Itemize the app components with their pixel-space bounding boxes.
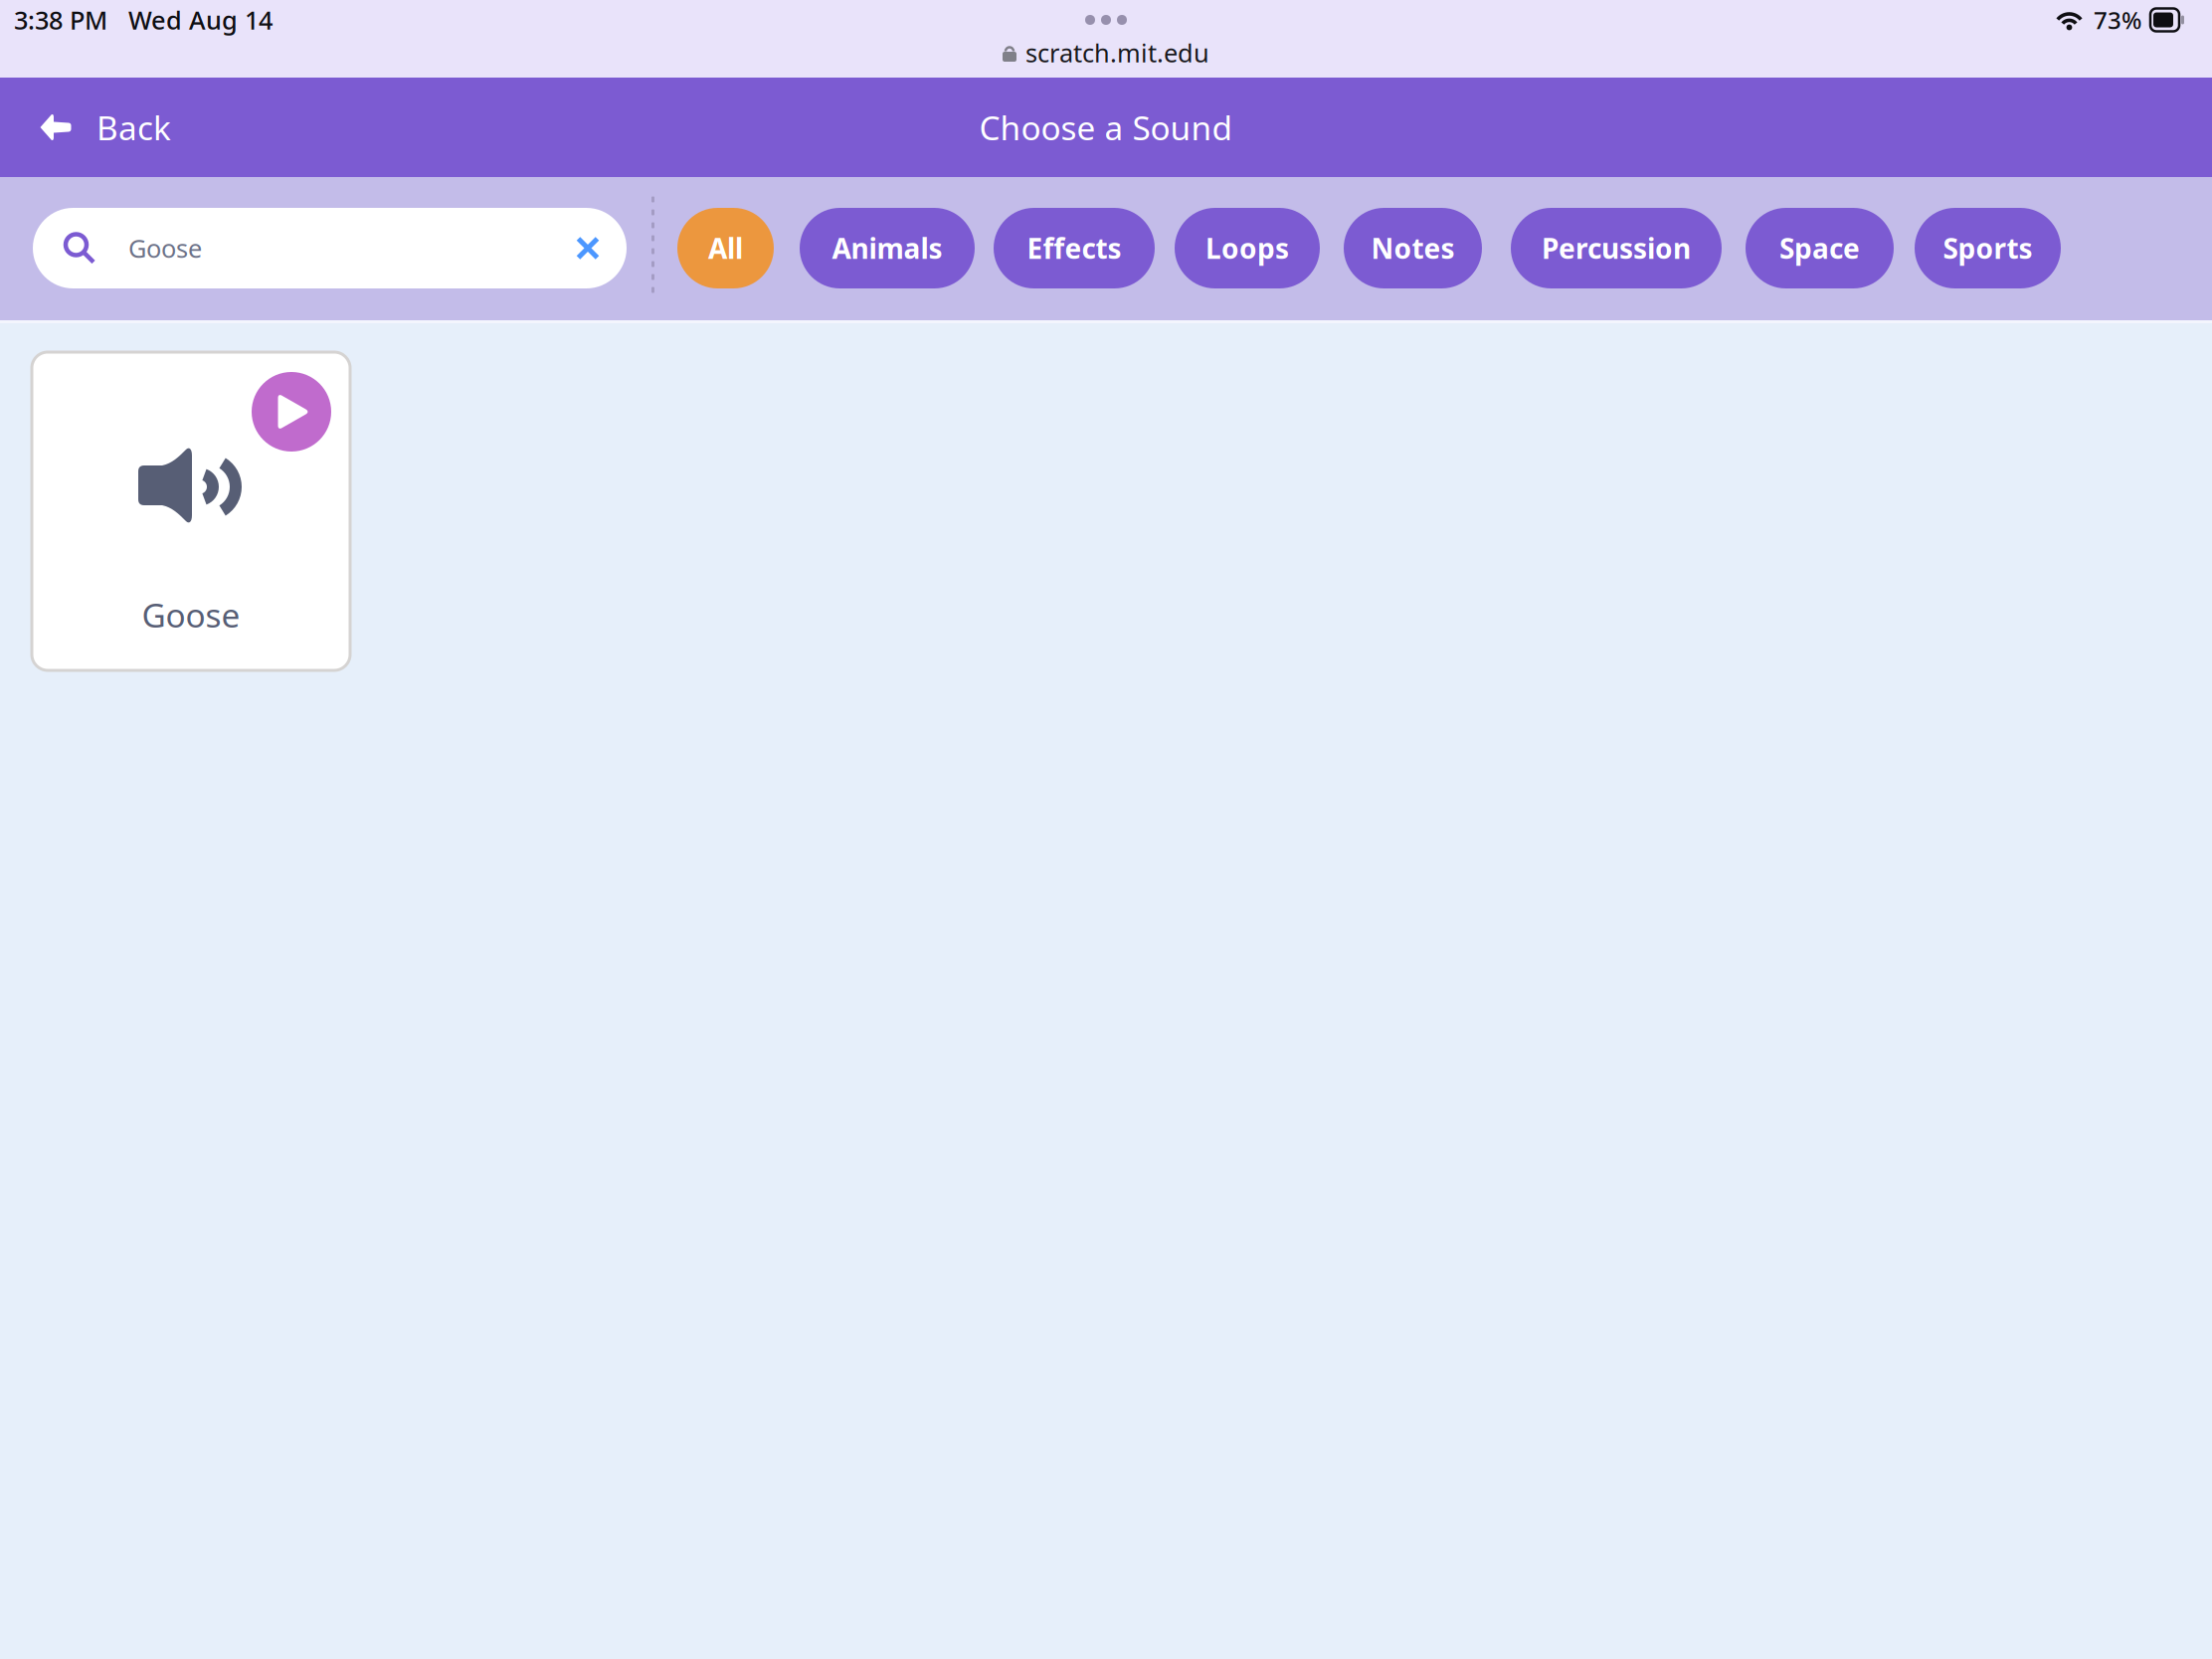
button[interactable]: Clear search — [576, 236, 627, 260]
staticText: Loops — [1205, 230, 1289, 267]
staticText: Wed Aug 14 — [128, 3, 273, 37]
button[interactable]: Goose — [32, 352, 350, 670]
staticText: Percussion — [1542, 230, 1691, 267]
staticText: Goose — [142, 593, 240, 637]
button[interactable]: Effects — [994, 208, 1155, 288]
staticText: 3:38 PM — [14, 3, 107, 37]
staticText: Goose — [128, 231, 202, 265]
button[interactable]: Notes — [1344, 208, 1482, 288]
staticText: Effects — [1027, 230, 1121, 267]
staticText: All — [708, 230, 743, 267]
button[interactable]: All — [677, 208, 774, 288]
staticText: Notes — [1371, 230, 1455, 267]
staticText: scratch.mit.edu — [1025, 36, 1209, 69]
staticText: 73% — [2094, 4, 2141, 36]
staticText: Sports — [1943, 230, 2032, 267]
staticText: Animals — [832, 230, 942, 267]
button[interactable]: Loops — [1175, 208, 1320, 288]
button[interactable]: Space — [1746, 208, 1894, 288]
button[interactable]: Sports — [1915, 208, 2061, 288]
button[interactable]: Back — [0, 78, 219, 177]
button[interactable]: Percussion — [1511, 208, 1722, 288]
staticText: Choose a Sound — [979, 105, 1233, 149]
staticText: Back — [96, 105, 171, 149]
button[interactable]: Animals — [800, 208, 975, 288]
staticText: Space — [1779, 230, 1860, 267]
